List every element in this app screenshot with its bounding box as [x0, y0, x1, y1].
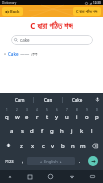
button[interactable]: Cake [63, 93, 91, 106]
button[interactable]: 3 [22, 106, 32, 123]
staticText: b [61, 142, 65, 150]
staticText: Cake [8, 51, 19, 57]
staticText: 9 [86, 108, 88, 112]
staticText: q [5, 113, 9, 121]
staticText: Cake [72, 97, 83, 103]
button[interactable]: Back [61, 170, 82, 183]
staticText: t [46, 113, 49, 121]
staticText: 7 [66, 108, 68, 112]
button[interactable]: Shift [1, 138, 16, 153]
staticText: k [80, 127, 84, 135]
button[interactable]: Home [40, 170, 61, 183]
button[interactable]: 5 [42, 106, 52, 123]
staticText: a [10, 127, 14, 135]
button[interactable]: v [48, 138, 58, 153]
staticText: 4 [36, 108, 38, 112]
staticText: 0 [96, 108, 98, 112]
staticText: v [51, 142, 55, 150]
staticText: 12:30 [93, 1, 101, 5]
staticText: z [20, 142, 23, 150]
button[interactable]: 9 [82, 106, 92, 123]
button[interactable]: l [87, 123, 97, 138]
staticText: Can [44, 97, 53, 103]
button[interactable]: Back [2, 7, 23, 16]
staticText: . [79, 158, 81, 165]
staticText: —— [19, 51, 31, 57]
button[interactable]: , [18, 153, 27, 169]
staticText: d [30, 127, 34, 135]
staticText: n [71, 142, 75, 150]
button[interactable]: 2 [12, 106, 22, 123]
button[interactable]: s [17, 123, 27, 138]
staticText: C দ্বারা গঠিত শব্দ [30, 20, 73, 31]
staticText: 6 [56, 108, 58, 112]
button[interactable]: 1 [1, 106, 12, 123]
button[interactable]: Recent apps [20, 170, 40, 183]
button[interactable]: 4 [32, 106, 42, 123]
staticText: r [36, 113, 39, 121]
staticText: কেক [31, 52, 38, 57]
staticText: f [41, 127, 44, 135]
button[interactable]: cake [11, 35, 93, 45]
button[interactable]: Hide keyboard [0, 170, 20, 183]
button[interactable]: f [37, 123, 47, 138]
staticText: 3 [26, 108, 28, 112]
staticText: e [25, 113, 29, 121]
button[interactable]: ?123 [1, 153, 18, 169]
staticText: m [80, 142, 86, 150]
staticText: 2 [16, 108, 18, 112]
staticText: Back [10, 9, 20, 14]
button[interactable]: k [77, 123, 87, 138]
staticText: English [44, 159, 58, 164]
staticText: 1 [6, 108, 8, 112]
staticText: Cam [15, 97, 25, 103]
button[interactable]: z [16, 138, 27, 153]
staticText: h [60, 127, 64, 135]
button[interactable]: Enter [84, 153, 102, 169]
staticText: u [65, 113, 69, 121]
staticText: p [95, 113, 99, 121]
staticText: , [22, 158, 24, 165]
button[interactable]: Can [34, 93, 62, 106]
button[interactable]: 7 [62, 106, 72, 123]
button[interactable]: Voice input [91, 93, 103, 106]
staticText: w [15, 113, 20, 121]
staticText: g [50, 127, 54, 135]
staticText: 5 [46, 108, 48, 112]
button[interactable]: m [78, 138, 88, 153]
button[interactable]: C দ্বারা গঠিত শব্দ [73, 7, 101, 16]
staticText: ▸ [60, 160, 62, 163]
button[interactable]: 8 [72, 106, 82, 123]
staticText: ?123 [5, 159, 14, 164]
button[interactable]: Backspace [88, 138, 102, 153]
button[interactable]: 0 [92, 106, 102, 123]
button[interactable]: d [27, 123, 37, 138]
staticText: 8 [76, 108, 78, 112]
button[interactable]: x [27, 138, 38, 153]
staticText: y [55, 113, 59, 121]
button[interactable]: h [57, 123, 67, 138]
button[interactable]: j [67, 123, 77, 138]
button[interactable]: n [68, 138, 78, 153]
button[interactable]: 6 [52, 106, 62, 123]
staticText: i [76, 113, 78, 121]
button[interactable]: Switch keyboard [82, 170, 103, 183]
staticText: Dictionary [2, 1, 17, 5]
staticText: s [21, 127, 24, 135]
staticText: c [42, 142, 45, 150]
staticText: x [31, 142, 35, 150]
staticText: ◂ [40, 160, 42, 163]
button[interactable]: a [7, 123, 17, 138]
button[interactable]: . [75, 153, 84, 169]
button[interactable]: Cam [6, 93, 33, 106]
button[interactable]: c [38, 138, 48, 153]
button[interactable]: b [58, 138, 68, 153]
button[interactable]: ◂ [27, 157, 75, 165]
button[interactable]: g [47, 123, 57, 138]
staticText: o [85, 113, 89, 121]
button[interactable]: Cake [0, 50, 103, 58]
staticText: C দ্বারা গঠিত শব্দ [76, 9, 98, 14]
staticText: cake [20, 37, 30, 43]
staticText: j [71, 127, 73, 135]
staticText: l [91, 127, 93, 135]
